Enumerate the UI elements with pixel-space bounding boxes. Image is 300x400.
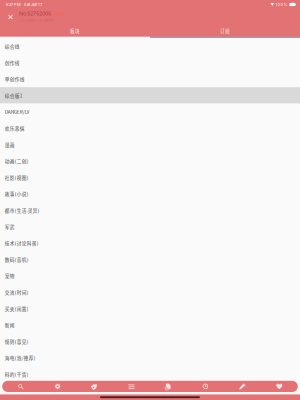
staticText: 军武 — [5, 223, 15, 230]
button[interactable]: Compose — [224, 381, 261, 392]
staticText: No.52752005 — [19, 10, 51, 17]
button[interactable]: 漫画 — [0, 136, 300, 153]
button[interactable]: Feed — [150, 381, 187, 392]
button[interactable]: Tags — [76, 381, 113, 392]
button[interactable]: 海电(泡/推荐) — [0, 350, 300, 366]
staticText: 综合版1 — [5, 92, 23, 99]
button[interactable]: History — [187, 381, 224, 392]
button[interactable]: Settings — [39, 381, 76, 392]
staticText: 科的(干货) — [5, 371, 29, 378]
button[interactable]: 板块 — [0, 25, 150, 37]
staticText: x岛 erotad.com 很古怪 — [19, 17, 53, 22]
staticText: 都市(生活.灵异) — [5, 207, 40, 214]
button[interactable]: 动画(二创) — [0, 153, 300, 169]
button[interactable]: 规则(意见) — [0, 333, 300, 350]
staticText: 技术(讨论科普) — [5, 240, 39, 246]
staticText: 欢乐恶搞 — [5, 125, 25, 132]
staticText: 板块 — [70, 27, 80, 34]
button[interactable]: DANGER/LV — [0, 104, 300, 120]
button[interactable]: 技术(讨论科普) — [0, 235, 300, 251]
button[interactable]: 科的(干货) — [0, 366, 300, 382]
button[interactable]: 买卖(闲置) — [0, 300, 300, 317]
staticText: DANGER/LV — [5, 108, 30, 115]
staticText: 海电(泡/推荐) — [5, 354, 36, 361]
staticText: 综合线 — [5, 43, 20, 50]
button[interactable]: 都市(生活.灵异) — [0, 202, 300, 218]
staticText: 单创作线 — [5, 76, 25, 82]
staticText: 规则(意见) — [5, 338, 29, 345]
button[interactable]: 新闻 — [0, 317, 300, 333]
button[interactable]: 故事(小说) — [0, 186, 300, 202]
button[interactable]: 综合线 — [0, 38, 300, 54]
button[interactable]: 单创作线 — [0, 71, 300, 87]
staticText: 宠物 — [5, 272, 15, 279]
button[interactable]: Close — [2, 9, 19, 24]
button[interactable]: 创作线 — [0, 54, 300, 71]
staticText: 动画(二创) — [5, 158, 29, 164]
staticText: 6:37 PM Sat Jun 17 — [6, 2, 42, 7]
button[interactable]: 欢乐恶搞 — [0, 120, 300, 136]
staticText: 买卖(闲置) — [5, 305, 29, 312]
staticText: 100% — [275, 2, 287, 7]
staticText: SAGE — [52, 10, 65, 17]
button[interactable]: Favorites — [261, 381, 298, 392]
button[interactable]: Menu — [113, 381, 150, 392]
staticText: 故事(小说) — [5, 190, 29, 197]
staticText: 新闻 — [5, 322, 15, 328]
button[interactable]: 宠物 — [0, 268, 300, 284]
staticText: 订阅 — [220, 27, 230, 34]
staticText: 交流(时间) — [5, 289, 29, 296]
staticText: 社影(视图) — [5, 174, 29, 181]
button[interactable]: 军武 — [0, 218, 300, 235]
button[interactable]: 社影(视图) — [0, 169, 300, 186]
button[interactable]: 综合版1 — [0, 87, 300, 104]
staticText: 漫画 — [5, 141, 15, 148]
staticText: 数码(音机) — [5, 256, 29, 263]
button[interactable]: 订阅 — [150, 25, 300, 37]
staticText: 创作线 — [5, 59, 20, 66]
button[interactable]: 交流(时间) — [0, 284, 300, 300]
button[interactable]: Search — [2, 381, 39, 392]
button[interactable]: 数码(音机) — [0, 251, 300, 268]
